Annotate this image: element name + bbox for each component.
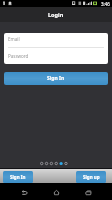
button[interactable]: Back: [16, 184, 32, 200]
button[interactable]: Home: [48, 184, 64, 200]
button[interactable]: Sign up: [76, 171, 106, 183]
button[interactable]: Sign In: [4, 72, 108, 85]
staticText: Sign up: [83, 174, 100, 180]
staticText: Password: [8, 53, 29, 59]
button[interactable]: Sign In: [3, 171, 33, 183]
staticText: 3:46: [101, 1, 110, 7]
staticText: Email: [8, 36, 20, 42]
staticText: Login: [48, 11, 64, 18]
staticText: Sign In: [47, 75, 65, 82]
button[interactable]: Recents: [80, 184, 96, 200]
staticText: Sign In: [10, 174, 26, 180]
